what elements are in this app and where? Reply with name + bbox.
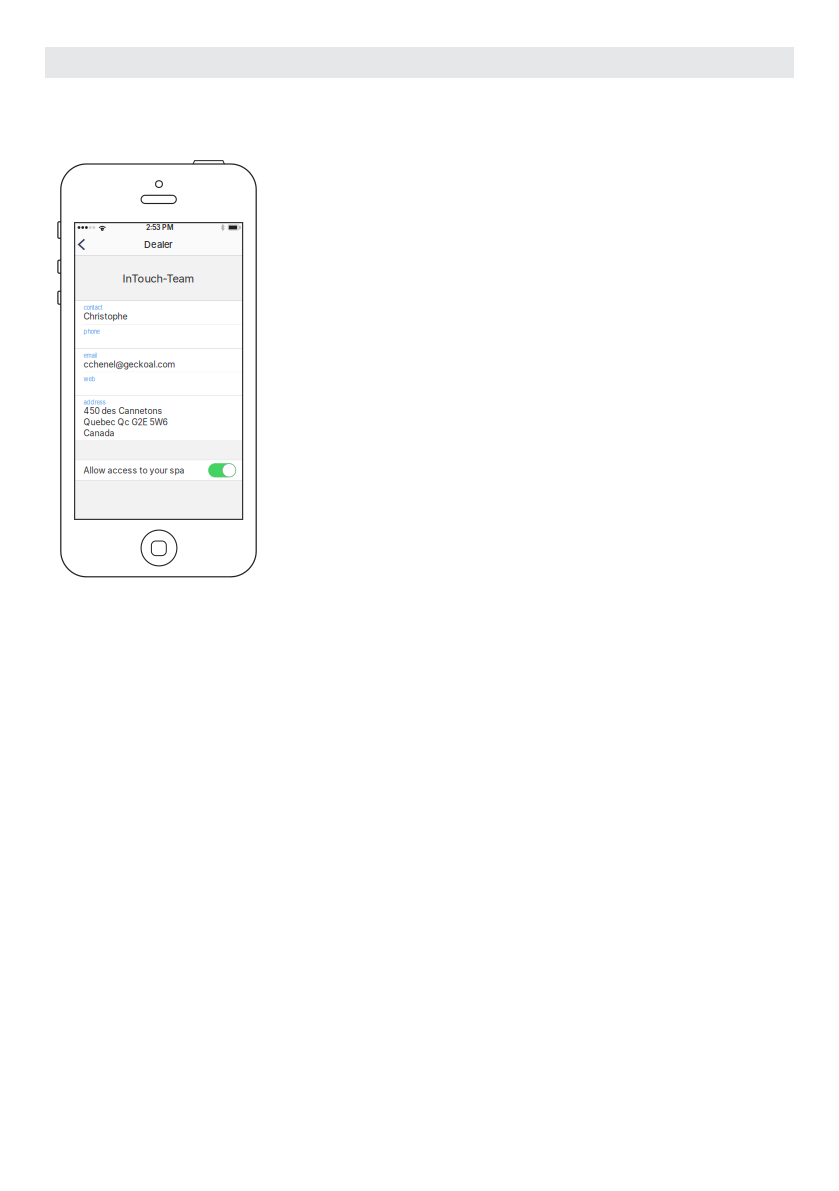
button[interactable]: phone: [74, 325, 243, 348]
staticText: contact: [83, 304, 102, 311]
staticText: cchenel@geckoal.com: [83, 359, 175, 370]
staticText: email: [83, 352, 96, 359]
staticText: Dealer: [144, 239, 173, 250]
staticText: web: [83, 376, 95, 382]
button[interactable]: contact: [74, 301, 243, 324]
staticText: Canada: [83, 428, 114, 438]
staticText: phone: [83, 328, 99, 335]
staticText: address: [83, 399, 105, 406]
button[interactable]: address: [74, 396, 243, 441]
button[interactable]: email: [74, 349, 243, 372]
button[interactable]: Allow access to your spa: [74, 460, 243, 480]
staticText: Allow access to your spa: [83, 465, 184, 475]
staticText: InTouch-Team: [123, 272, 195, 285]
staticText: Christophe: [83, 311, 127, 322]
button[interactable]: web: [74, 372, 243, 395]
button[interactable]: Back: [74, 234, 91, 255]
staticText: 450 des Cannetons: [83, 406, 162, 416]
staticText: Quebec Qc G2E 5W6: [83, 417, 167, 427]
staticText: 2:53 PM: [146, 223, 173, 232]
